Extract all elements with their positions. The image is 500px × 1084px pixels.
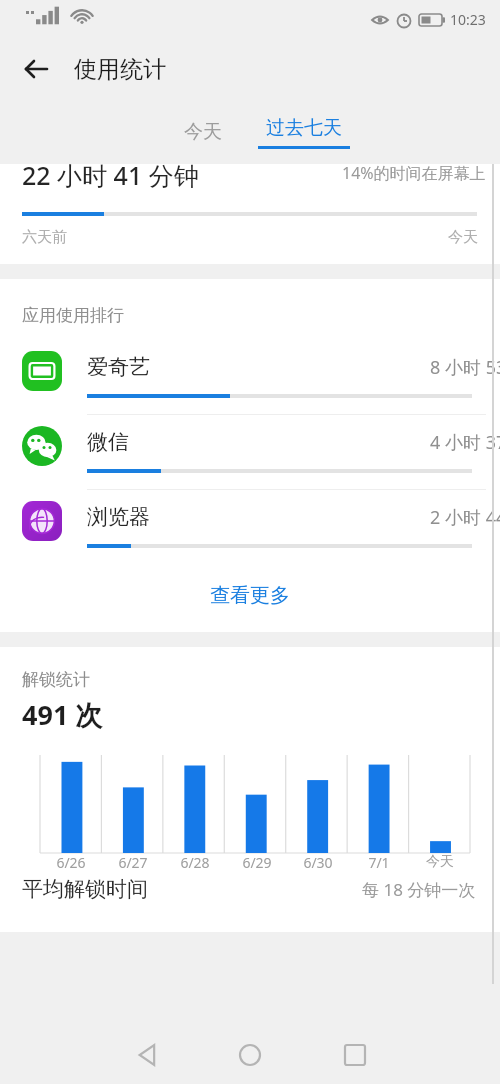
staticText: 4 小时 37 分钟 (430, 430, 500, 455)
staticText: 6/27 (118, 853, 148, 872)
staticText: 应用使用排行 (22, 305, 124, 326)
button[interactable]: Back (12, 45, 60, 93)
staticText: 解锁统计 (22, 669, 90, 690)
staticText: 2 小时 44 分钟 (430, 505, 500, 530)
staticText: 使用统计 (74, 55, 166, 84)
staticText: 每 18 分钟一次 (362, 878, 476, 901)
button[interactable]: 微信 (0, 415, 500, 489)
button[interactable]: 今天 (170, 114, 236, 150)
staticText: 浏览器 (87, 504, 150, 530)
staticText: 14%的时间在屏幕上 (342, 162, 486, 184)
staticText: 六天前 (22, 228, 67, 247)
button[interactable]: Home (226, 1031, 274, 1079)
staticText: 7/1 (368, 853, 390, 872)
button[interactable]: 浏览器 (0, 490, 500, 564)
staticText: 6/26 (56, 853, 86, 872)
button[interactable]: Back (124, 1031, 172, 1079)
staticText: 查看更多 (210, 583, 290, 608)
button[interactable]: 过去七天 (258, 116, 350, 149)
button[interactable]: 查看更多 (0, 564, 500, 626)
staticText: 过去七天 (266, 116, 342, 140)
staticText: 22 小时 41 分钟 (22, 158, 199, 192)
staticText: 8 小时 53 分钟 (430, 355, 500, 380)
staticText: 491 次 (22, 696, 103, 733)
staticText: 爱奇艺 (87, 354, 150, 380)
button[interactable]: Recents (331, 1031, 379, 1079)
staticText: 今天 (448, 228, 478, 247)
button[interactable]: 爱奇艺 (0, 340, 500, 414)
staticText: 6/29 (242, 853, 272, 872)
staticText: 6/30 (303, 853, 333, 872)
staticText: 今天 (426, 853, 454, 871)
staticText: 今天 (184, 120, 222, 144)
staticText: 微信 (87, 429, 129, 455)
staticText: 6/28 (180, 853, 210, 872)
staticText: 平均解锁时间 (22, 876, 148, 902)
staticText: 10:23 (450, 10, 486, 29)
